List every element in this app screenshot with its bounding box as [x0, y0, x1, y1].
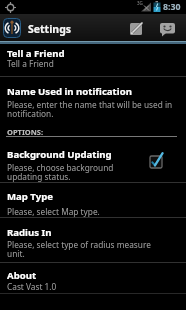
button[interactable]	[159, 22, 176, 37]
staticText: 8:30	[163, 1, 181, 13]
staticText: Please, enter the name that will be used…	[7, 99, 173, 119]
staticText: Name Used in notification	[7, 85, 132, 98]
button[interactable]: About	[0, 263, 186, 295]
button[interactable]	[129, 21, 145, 37]
button[interactable]: Radius In	[0, 218, 186, 263]
staticText: Cast Vast 1.0	[7, 281, 57, 292]
staticText: Tell a Friend	[7, 58, 54, 69]
staticText: Map Type	[7, 190, 53, 203]
staticText: Please, choose background updating statu…	[7, 162, 114, 182]
staticText: Radius In	[7, 226, 52, 239]
staticText: 3G	[137, 0, 143, 6]
staticText: Settings	[28, 22, 72, 36]
button[interactable]: Background Updating	[0, 138, 186, 183]
button[interactable]	[3, 18, 21, 38]
button[interactable]: Tell a Friend	[0, 44, 186, 77]
staticText: Please, select type of radius measure un…	[7, 239, 151, 259]
staticText: OPTIONS:	[7, 127, 44, 137]
staticText: Tell a Friend	[7, 47, 65, 60]
button[interactable]: Map Type	[0, 183, 186, 218]
staticText: Please, select Map type.	[7, 206, 100, 217]
staticText: About	[7, 269, 37, 282]
staticText: Background Updating	[7, 148, 112, 161]
button[interactable]: Name Used in notification	[0, 77, 186, 121]
